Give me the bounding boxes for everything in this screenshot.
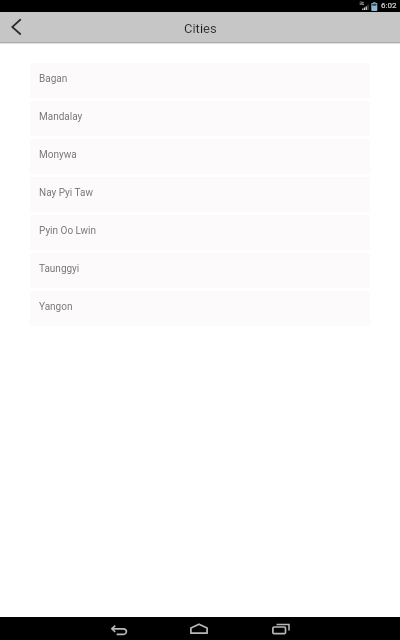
button[interactable]: Recent apps [251, 617, 311, 640]
staticText: 6:02 [381, 1, 397, 10]
staticText: Mandalay [39, 111, 83, 123]
button[interactable]: Monywa [30, 139, 370, 174]
button[interactable]: Navigate up [0, 12, 34, 42]
staticText: Taunggyi [39, 263, 80, 275]
button[interactable]: Bagan [30, 63, 370, 98]
staticText: Monywa [39, 149, 77, 161]
button[interactable]: Pyin Oo Lwin [30, 215, 370, 250]
button[interactable]: Taunggyi [30, 253, 370, 288]
button[interactable]: Yangon [30, 291, 370, 326]
staticText: Pyin Oo Lwin [39, 225, 97, 237]
button[interactable]: Nay Pyi Taw [30, 177, 370, 212]
button[interactable]: Mandalay [30, 101, 370, 136]
staticText: Bagan [39, 73, 68, 85]
staticText: Yangon [39, 301, 73, 313]
staticText: Cities [184, 21, 217, 36]
button[interactable]: Back [90, 617, 150, 640]
staticText: Nay Pyi Taw [39, 187, 93, 199]
button[interactable]: Home [169, 617, 229, 640]
